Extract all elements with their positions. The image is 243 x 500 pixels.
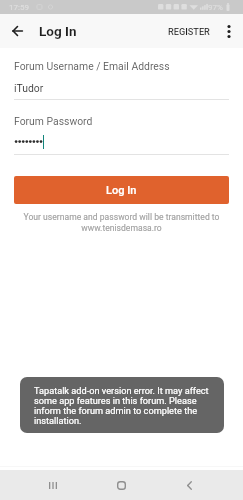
button[interactable]: Back	[0, 14, 34, 48]
button[interactable]: More options	[215, 14, 243, 48]
staticText: Forum Username / Email Address	[14, 60, 170, 72]
button[interactable]: Back	[169, 470, 209, 500]
staticText: REGISTER	[168, 26, 210, 37]
staticText: Log In	[39, 23, 77, 39]
staticText: Log In	[106, 184, 137, 197]
button[interactable]: REGISTER	[160, 14, 218, 48]
staticText: iTudor	[14, 82, 44, 94]
button[interactable]: Log In	[14, 176, 229, 204]
staticText: Forum Password	[14, 115, 93, 127]
button[interactable]: Home	[101, 470, 141, 500]
staticText: 97%	[208, 3, 223, 12]
staticText: 17:59	[9, 3, 29, 12]
staticText: Your username and password will be trans…	[0, 212, 243, 233]
staticText: Tapatalk add-on version error. It may af…	[34, 385, 211, 426]
button[interactable]: Recent apps	[33, 470, 73, 500]
